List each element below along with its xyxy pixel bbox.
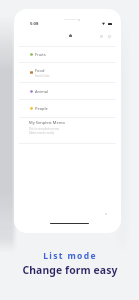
button[interactable]: Home [66,31,74,39]
staticText: People [35,106,48,111]
staticText: This is simplest memo Make memo easily [29,127,60,135]
staticText: Change form easy [22,263,118,277]
button[interactable]: Food [14,63,121,82]
staticText: Food Color [35,74,50,78]
button[interactable]: Fruits [14,47,121,62]
staticText: Fruits [35,52,46,57]
button[interactable]: Animal [14,83,121,99]
staticText: My Simplest Memo [29,120,65,125]
staticText: Food [35,68,45,73]
button[interactable]: My Simplest Memo [14,118,121,143]
button[interactable]: Refresh [105,32,113,40]
staticText: List mode [43,250,97,262]
staticText: Animal [35,89,49,94]
staticText: 5:08 [30,21,39,27]
button[interactable]: List view [97,32,105,40]
button[interactable]: People [14,100,121,117]
